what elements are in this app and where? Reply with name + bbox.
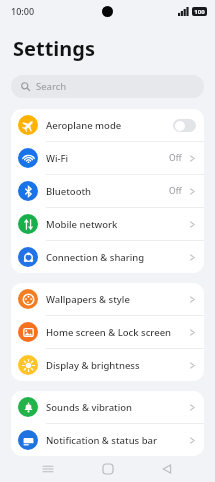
staticText: Home screen & Lock screen: [46, 326, 172, 339]
staticText: Wallpapers & style: [46, 293, 130, 306]
staticText: Search: [36, 80, 67, 93]
button[interactable]: Aeroplane mode toggle: [173, 119, 196, 132]
button[interactable]: Back: [155, 457, 179, 481]
button[interactable]: Mobile network: [11, 208, 204, 240]
staticText: Off: [169, 152, 182, 164]
staticText: Settings: [13, 35, 95, 62]
button[interactable]: Sounds & vibration: [11, 391, 204, 423]
staticText: 10:00: [11, 5, 35, 17]
button[interactable]: Notification & status bar: [11, 424, 204, 456]
button[interactable]: Display & brightness: [11, 349, 204, 381]
button[interactable]: Wallpapers & style: [11, 283, 204, 315]
staticText: Bluetooth: [46, 185, 92, 198]
button[interactable]: Connection & sharing: [11, 241, 204, 273]
staticText: Mobile network: [46, 218, 118, 231]
button[interactable]: Home screen & Lock screen: [11, 316, 204, 348]
button[interactable]: Search: [11, 75, 204, 98]
staticText: Notification & status bar: [46, 434, 158, 447]
staticText: 100: [194, 8, 205, 16]
staticText: Off: [169, 185, 182, 197]
staticText: Aeroplane mode: [46, 119, 122, 132]
button[interactable]: Home: [96, 457, 120, 481]
staticText: Wi-Fi: [46, 152, 69, 165]
staticText: Sounds & vibration: [46, 401, 133, 414]
staticText: Connection & sharing: [46, 251, 145, 264]
button[interactable]: Bluetooth: [11, 175, 204, 207]
button[interactable]: Aeroplane mode: [11, 109, 204, 141]
staticText: Display & brightness: [46, 359, 140, 372]
button[interactable]: Recent apps: [36, 457, 60, 481]
button[interactable]: Wi-Fi: [11, 142, 204, 174]
